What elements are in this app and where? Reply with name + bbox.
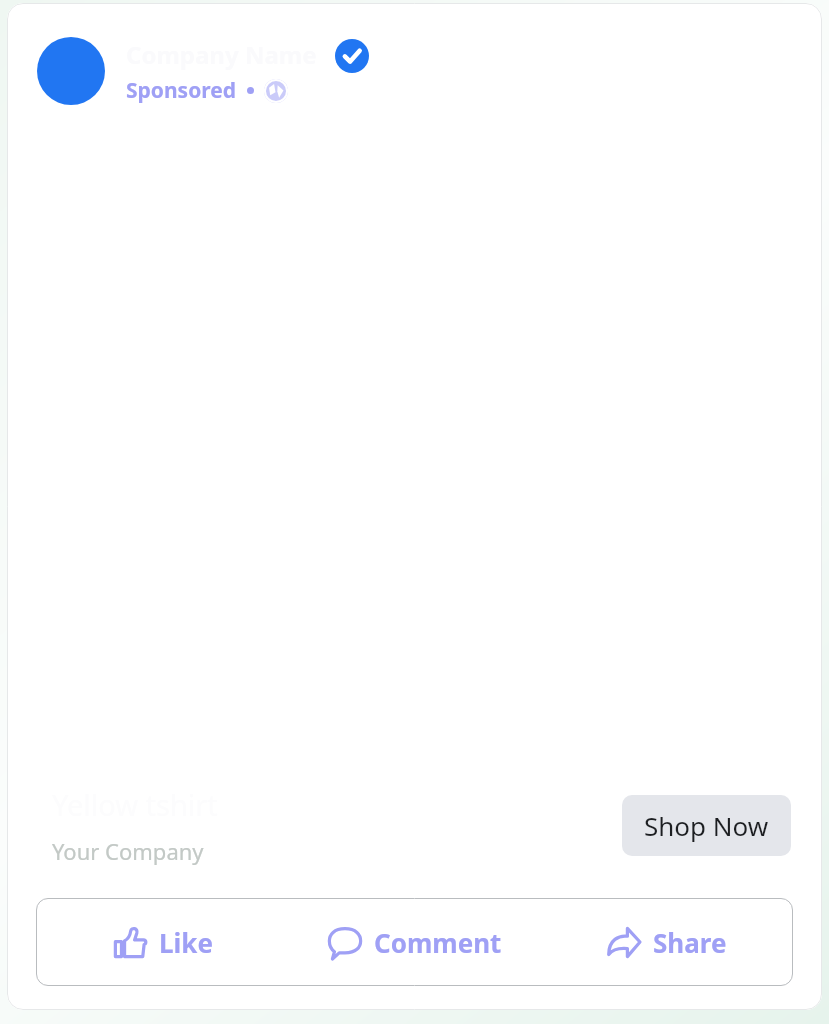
staticText: Shop Now bbox=[644, 808, 769, 843]
staticText: Your Company bbox=[52, 836, 204, 866]
staticText: Comment bbox=[374, 925, 502, 960]
button[interactable]: Like bbox=[36, 898, 289, 986]
staticText: Sponsored bbox=[126, 76, 237, 105]
button[interactable]: Comment bbox=[289, 898, 541, 986]
button[interactable]: Verified bbox=[335, 39, 369, 73]
button[interactable]: Share bbox=[541, 898, 793, 986]
staticText: Like bbox=[159, 925, 213, 960]
staticText: Share bbox=[653, 925, 727, 960]
button[interactable]: Shop Now bbox=[622, 795, 791, 856]
button[interactable]: Company Name bbox=[126, 38, 317, 105]
button[interactable]: Company avatar bbox=[37, 37, 105, 105]
